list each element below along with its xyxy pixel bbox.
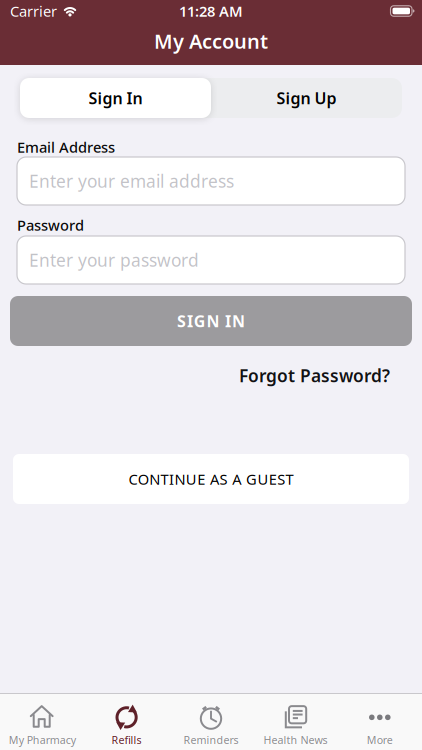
button[interactable]: Refills — [84, 704, 169, 747]
staticText: Carrier — [10, 1, 57, 21]
staticText: My Pharmacy — [9, 733, 76, 747]
button[interactable]: More — [338, 704, 422, 747]
staticText: Refills — [112, 733, 142, 747]
staticText: My Account — [154, 28, 268, 54]
staticText: Health News — [263, 733, 327, 747]
staticText: Password — [17, 215, 84, 235]
staticText: 11:28 AM — [179, 1, 243, 21]
staticText: Forgot Password? — [239, 364, 390, 387]
staticText: Enter your email address — [29, 169, 234, 192]
staticText: Enter your password — [29, 248, 199, 271]
button[interactable]: SIGN IN — [10, 296, 412, 346]
button[interactable]: Reminders — [169, 704, 253, 747]
button[interactable]: Forgot Password? — [239, 364, 390, 387]
staticText: SIGN IN — [177, 310, 245, 332]
button[interactable]: Password — [17, 236, 405, 284]
staticText: Reminders — [183, 733, 238, 747]
staticText: More — [367, 733, 393, 747]
button[interactable]: Sign In — [20, 78, 211, 118]
button[interactable]: Health News — [253, 704, 338, 747]
button[interactable]: My Pharmacy — [0, 704, 84, 747]
button[interactable]: Email Address — [17, 157, 405, 205]
staticText: Sign Up — [276, 87, 336, 109]
button[interactable]: Sign Up — [211, 78, 402, 118]
button[interactable]: CONTINUE AS A GUEST — [13, 454, 409, 504]
staticText: Email Address — [17, 137, 115, 157]
staticText: Sign In — [88, 87, 142, 109]
staticText: CONTINUE AS A GUEST — [128, 469, 294, 489]
